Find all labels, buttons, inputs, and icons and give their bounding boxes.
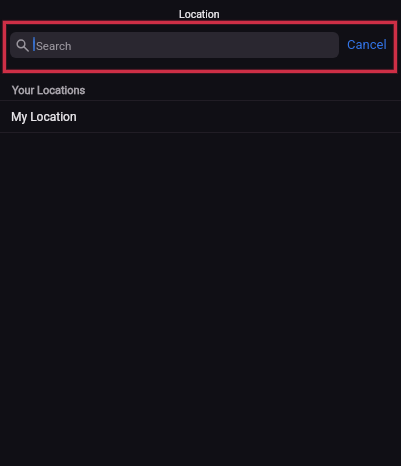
staticText: Search (36, 39, 72, 52)
button[interactable]: Search (10, 32, 339, 58)
other: Search (10, 32, 339, 58)
staticText: My Location (11, 110, 77, 124)
staticText: Your Locations (12, 84, 86, 97)
staticText: Cancel (347, 37, 387, 52)
button[interactable]: Cancel (346, 33, 388, 56)
button[interactable]: My Location (0, 101, 401, 132)
staticText: Location (179, 8, 220, 20)
